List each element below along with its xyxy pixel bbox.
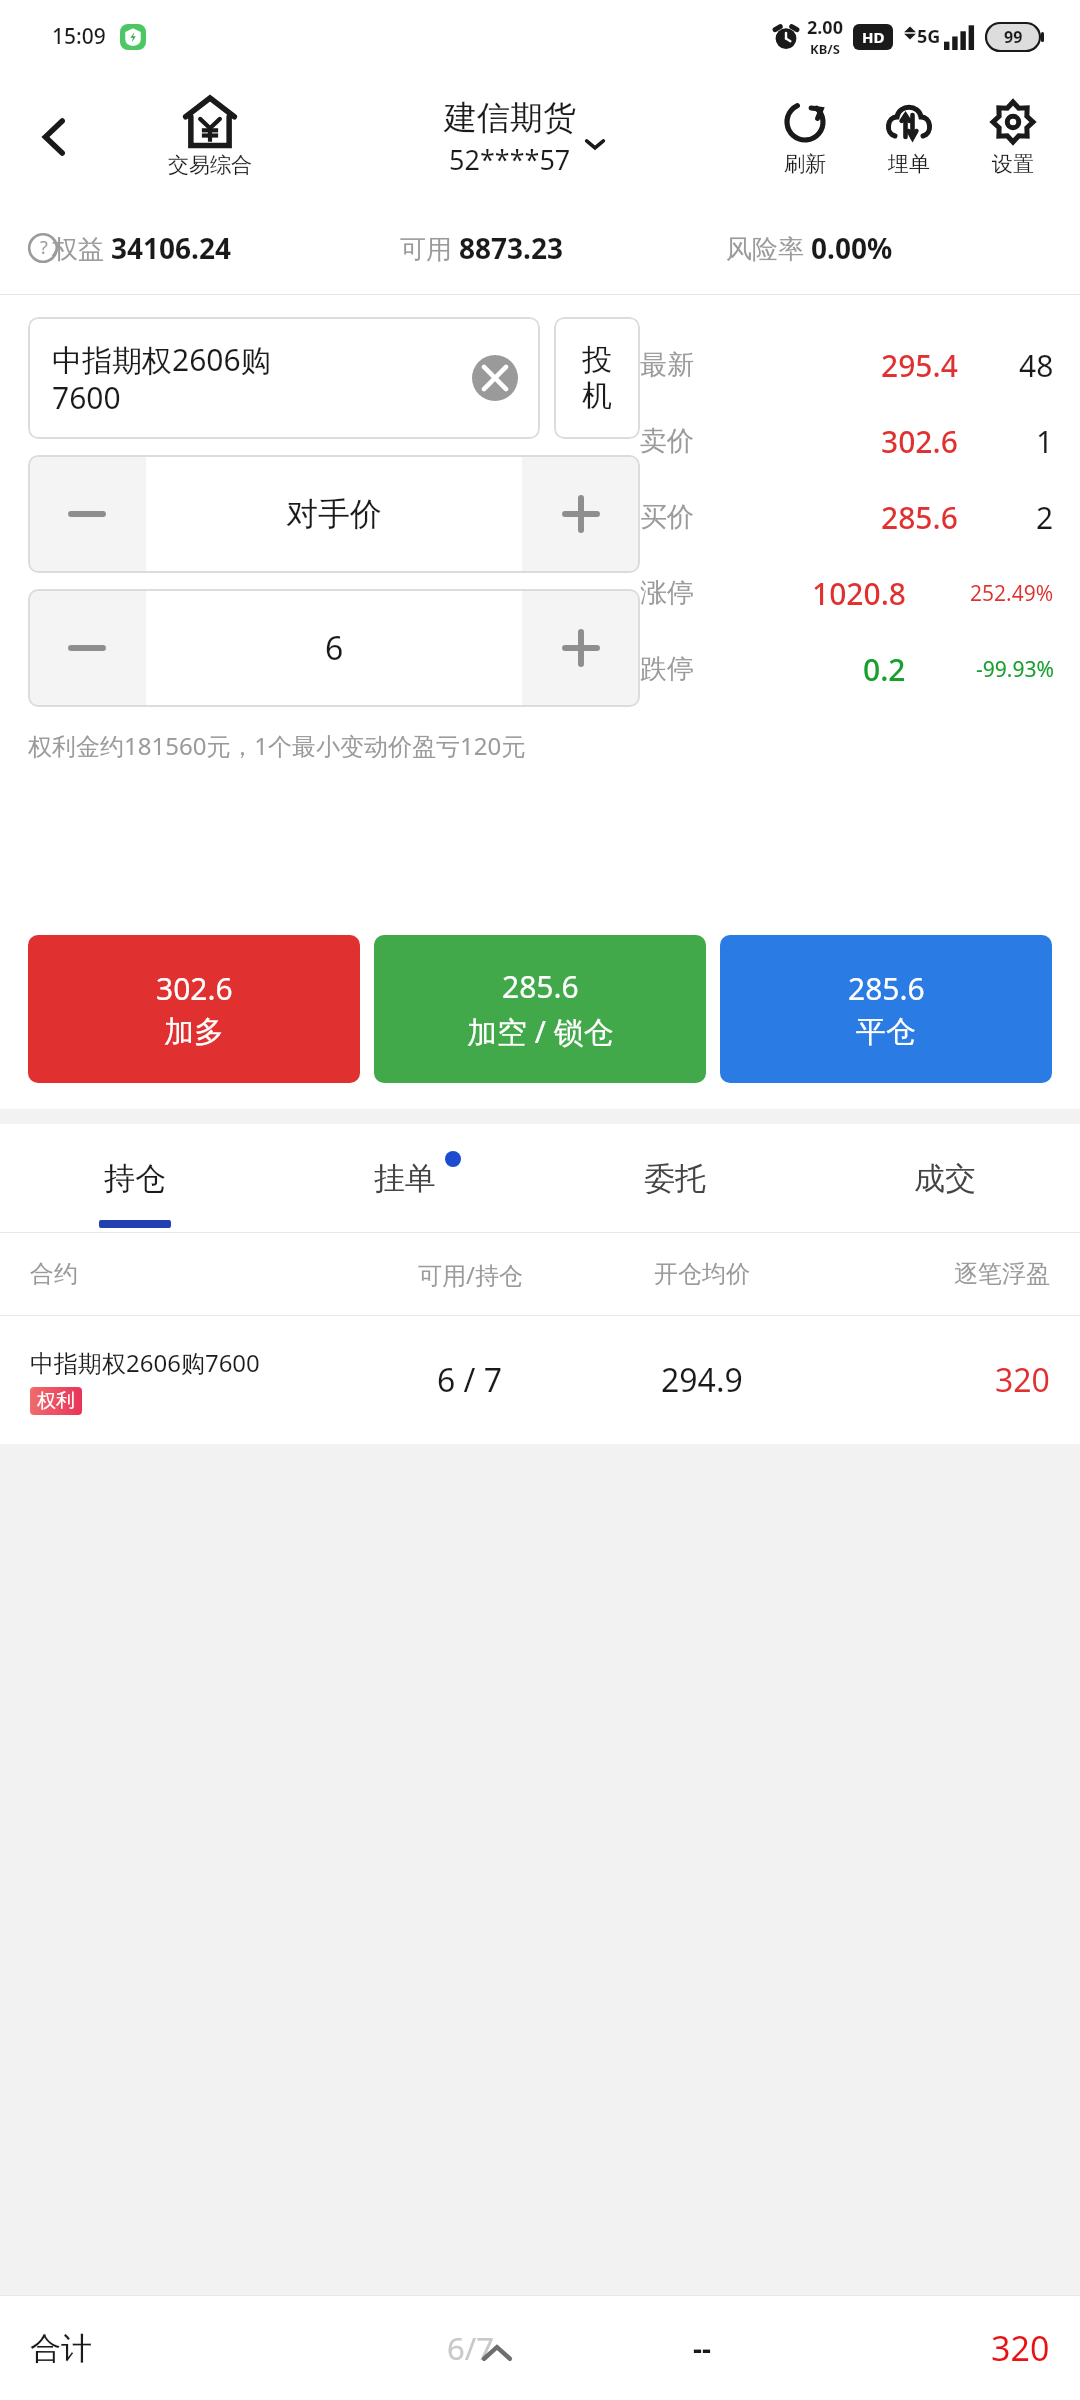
staticText: 中指期权2606购 7600 bbox=[52, 339, 271, 418]
staticText: 交易综合 bbox=[168, 152, 252, 178]
staticText: 2.00 bbox=[807, 15, 843, 40]
button[interactable]: 跌停 bbox=[640, 631, 1054, 707]
staticText: 买价 bbox=[640, 500, 732, 534]
staticText: 权利金约181560元，1个最小变动价盈亏120元 bbox=[28, 729, 526, 762]
button[interactable]: 成交 bbox=[810, 1124, 1080, 1232]
staticText: 320 bbox=[995, 1358, 1050, 1402]
staticText: 6/7 bbox=[447, 2327, 494, 2369]
staticText: 6 / 7 bbox=[437, 1358, 503, 1402]
staticText: 52****57 bbox=[449, 141, 571, 178]
staticText: 设置 bbox=[992, 151, 1034, 177]
staticText: 刷新 bbox=[784, 151, 826, 177]
staticText: 投 机 bbox=[582, 341, 612, 415]
button[interactable]: 涨停 bbox=[640, 555, 1054, 631]
button[interactable]: 中指期权2606购 7600 bbox=[28, 317, 540, 439]
staticText: 252.49% bbox=[970, 579, 1054, 608]
staticText: 302.6 bbox=[156, 968, 233, 1009]
button[interactable]: ? bbox=[28, 229, 400, 267]
staticText: 风险率 bbox=[726, 230, 811, 266]
staticText: 0.00% bbox=[811, 229, 893, 267]
staticText: ? bbox=[40, 235, 48, 260]
button[interactable]: Decrease bbox=[28, 455, 146, 573]
staticText: 285.6 bbox=[881, 497, 958, 538]
staticText: 285.6 bbox=[848, 968, 925, 1009]
staticText: 埋单 bbox=[888, 151, 930, 177]
staticText: KB/S bbox=[810, 40, 840, 58]
staticText: 302.6 bbox=[881, 421, 958, 462]
staticText: 中指期权2606购7600 bbox=[30, 1346, 260, 1379]
staticText: 加多 bbox=[164, 1013, 224, 1051]
staticText: 320 bbox=[991, 2325, 1050, 2371]
button[interactable]: 建信期货 bbox=[444, 97, 606, 178]
staticText: 285.6 bbox=[502, 966, 579, 1007]
staticText: 持仓 bbox=[104, 1159, 166, 1198]
staticText: 0.2 bbox=[863, 649, 906, 690]
staticText: 卖价 bbox=[640, 424, 732, 458]
staticText: 平仓 bbox=[856, 1013, 916, 1051]
button[interactable]: Back bbox=[0, 72, 110, 202]
staticText: 对手价 bbox=[286, 494, 382, 534]
staticText: 开仓均价 bbox=[654, 1259, 750, 1289]
button[interactable]: 持仓 bbox=[0, 1124, 270, 1232]
staticText: 最新 bbox=[640, 348, 732, 382]
button[interactable]: 6 bbox=[146, 589, 522, 707]
button[interactable]: 投 机 bbox=[554, 317, 640, 439]
staticText: 295.4 bbox=[881, 345, 958, 386]
button[interactable]: 刷新 bbox=[760, 97, 850, 177]
button[interactable]: 买价 bbox=[640, 479, 1054, 555]
button[interactable]: Clear bbox=[472, 355, 518, 401]
staticText: 成交 bbox=[914, 1159, 976, 1198]
staticText: 34106.24 bbox=[111, 229, 231, 267]
button[interactable]: 对手价 bbox=[146, 455, 522, 573]
staticText: 加空 / 锁仓 bbox=[467, 1011, 614, 1052]
staticText: 跌停 bbox=[640, 652, 732, 686]
button[interactable]: 285.6 bbox=[374, 935, 706, 1083]
staticText: 可用 bbox=[400, 230, 459, 266]
staticText: 权利 bbox=[37, 1389, 75, 1413]
staticText: 1020.8 bbox=[812, 573, 906, 614]
button[interactable]: 交易综合 bbox=[140, 96, 280, 178]
staticText: 逐笔浮盈 bbox=[954, 1259, 1050, 1289]
staticText: -99.93% bbox=[976, 655, 1054, 684]
button[interactable]: 卖价 bbox=[640, 403, 1054, 479]
staticText: 294.9 bbox=[661, 1358, 743, 1402]
button[interactable]: 302.6 bbox=[28, 935, 360, 1083]
staticText: 8873.23 bbox=[459, 229, 563, 267]
staticText: 1 bbox=[1036, 421, 1054, 462]
staticText: 可用/持仓 bbox=[418, 1258, 523, 1291]
button[interactable]: Increase bbox=[522, 455, 640, 573]
staticText: 5G bbox=[917, 24, 941, 49]
staticText: 合约 bbox=[30, 1259, 354, 1289]
staticText: HD bbox=[862, 27, 885, 47]
staticText: 挂单 bbox=[374, 1159, 436, 1198]
staticText: 99 bbox=[1004, 26, 1023, 48]
button[interactable]: Increase bbox=[522, 589, 640, 707]
staticText: 合计 bbox=[30, 2329, 354, 2368]
staticText: 委托 bbox=[644, 1159, 706, 1198]
button[interactable]: 挂单 bbox=[270, 1124, 540, 1232]
staticText: 2 bbox=[1036, 497, 1054, 538]
button[interactable]: 埋单 bbox=[864, 97, 954, 177]
staticText: 6 bbox=[325, 626, 344, 670]
button[interactable]: 中指期权2606购7600 bbox=[30, 1316, 1050, 1444]
button[interactable]: 285.6 bbox=[720, 935, 1052, 1083]
button[interactable]: 设置 bbox=[968, 97, 1058, 177]
staticText: 建信期货 bbox=[444, 97, 576, 139]
staticText: 涨停 bbox=[640, 576, 732, 610]
staticText: -- bbox=[693, 2329, 711, 2367]
staticText: 15:09 bbox=[52, 22, 106, 51]
staticText: 48 bbox=[1019, 345, 1054, 386]
button[interactable]: Decrease bbox=[28, 589, 146, 707]
button[interactable]: 委托 bbox=[540, 1124, 810, 1232]
staticText: 权益 bbox=[52, 230, 111, 266]
button[interactable]: 最新 bbox=[640, 327, 1054, 403]
